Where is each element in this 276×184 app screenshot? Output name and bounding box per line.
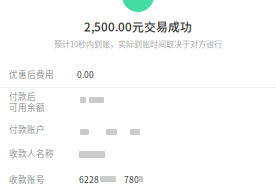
staticText: 付款后 bbox=[9, 90, 36, 102]
staticText: 0.00 bbox=[77, 68, 94, 80]
staticText: 优惠后费用 bbox=[9, 68, 54, 80]
staticText: 可用余额 bbox=[9, 101, 45, 113]
staticText: 付款账户 bbox=[9, 123, 45, 135]
staticText: 780 bbox=[124, 173, 139, 184]
staticText: 预计10秒内到账，实际到账时间取决于对方银行 bbox=[54, 38, 222, 50]
staticText: 2,500.00元交易成功 bbox=[84, 18, 192, 35]
staticText: 收款账号 bbox=[9, 173, 45, 184]
staticText: 6228 bbox=[79, 173, 99, 184]
staticText: 收款人名称 bbox=[9, 147, 54, 159]
